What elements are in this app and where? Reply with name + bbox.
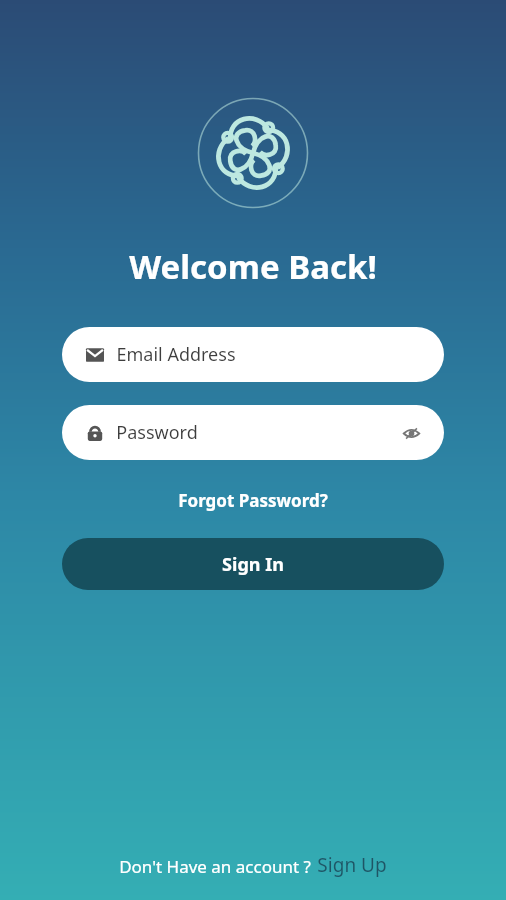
staticText: Sign Up xyxy=(317,852,387,878)
button[interactable]: Show password xyxy=(398,420,424,446)
button[interactable]: Password xyxy=(62,405,444,460)
staticText: Don't Have an account ? xyxy=(119,855,311,878)
button[interactable]: Email xyxy=(62,327,444,382)
other: Email xyxy=(86,346,104,364)
staticText: Password xyxy=(116,420,198,445)
button[interactable]: Sign Up xyxy=(317,852,387,878)
staticText: Welcome Back! xyxy=(129,244,377,289)
staticText: Sign In xyxy=(222,552,284,577)
button[interactable]: Forgot Password? xyxy=(170,485,336,516)
staticText: Email Address xyxy=(116,342,236,367)
button[interactable]: Sign In xyxy=(62,538,444,590)
staticText: Forgot Password? xyxy=(178,489,328,512)
other: Password xyxy=(86,424,104,442)
